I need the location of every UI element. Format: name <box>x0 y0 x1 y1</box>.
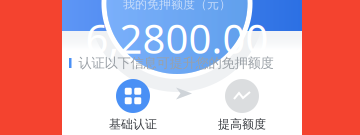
button[interactable]: 基础认证 <box>89 79 177 135</box>
staticText: 我的免押额度（元） <box>123 0 231 12</box>
staticText: 基础认证 <box>109 117 157 132</box>
staticText: 认证以下信息可提升您的免押额度 <box>78 55 273 71</box>
staticText: 提高额度 <box>218 117 266 132</box>
staticText: 6,2800.00 <box>85 12 268 65</box>
button[interactable]: 提高额度 <box>198 79 286 135</box>
